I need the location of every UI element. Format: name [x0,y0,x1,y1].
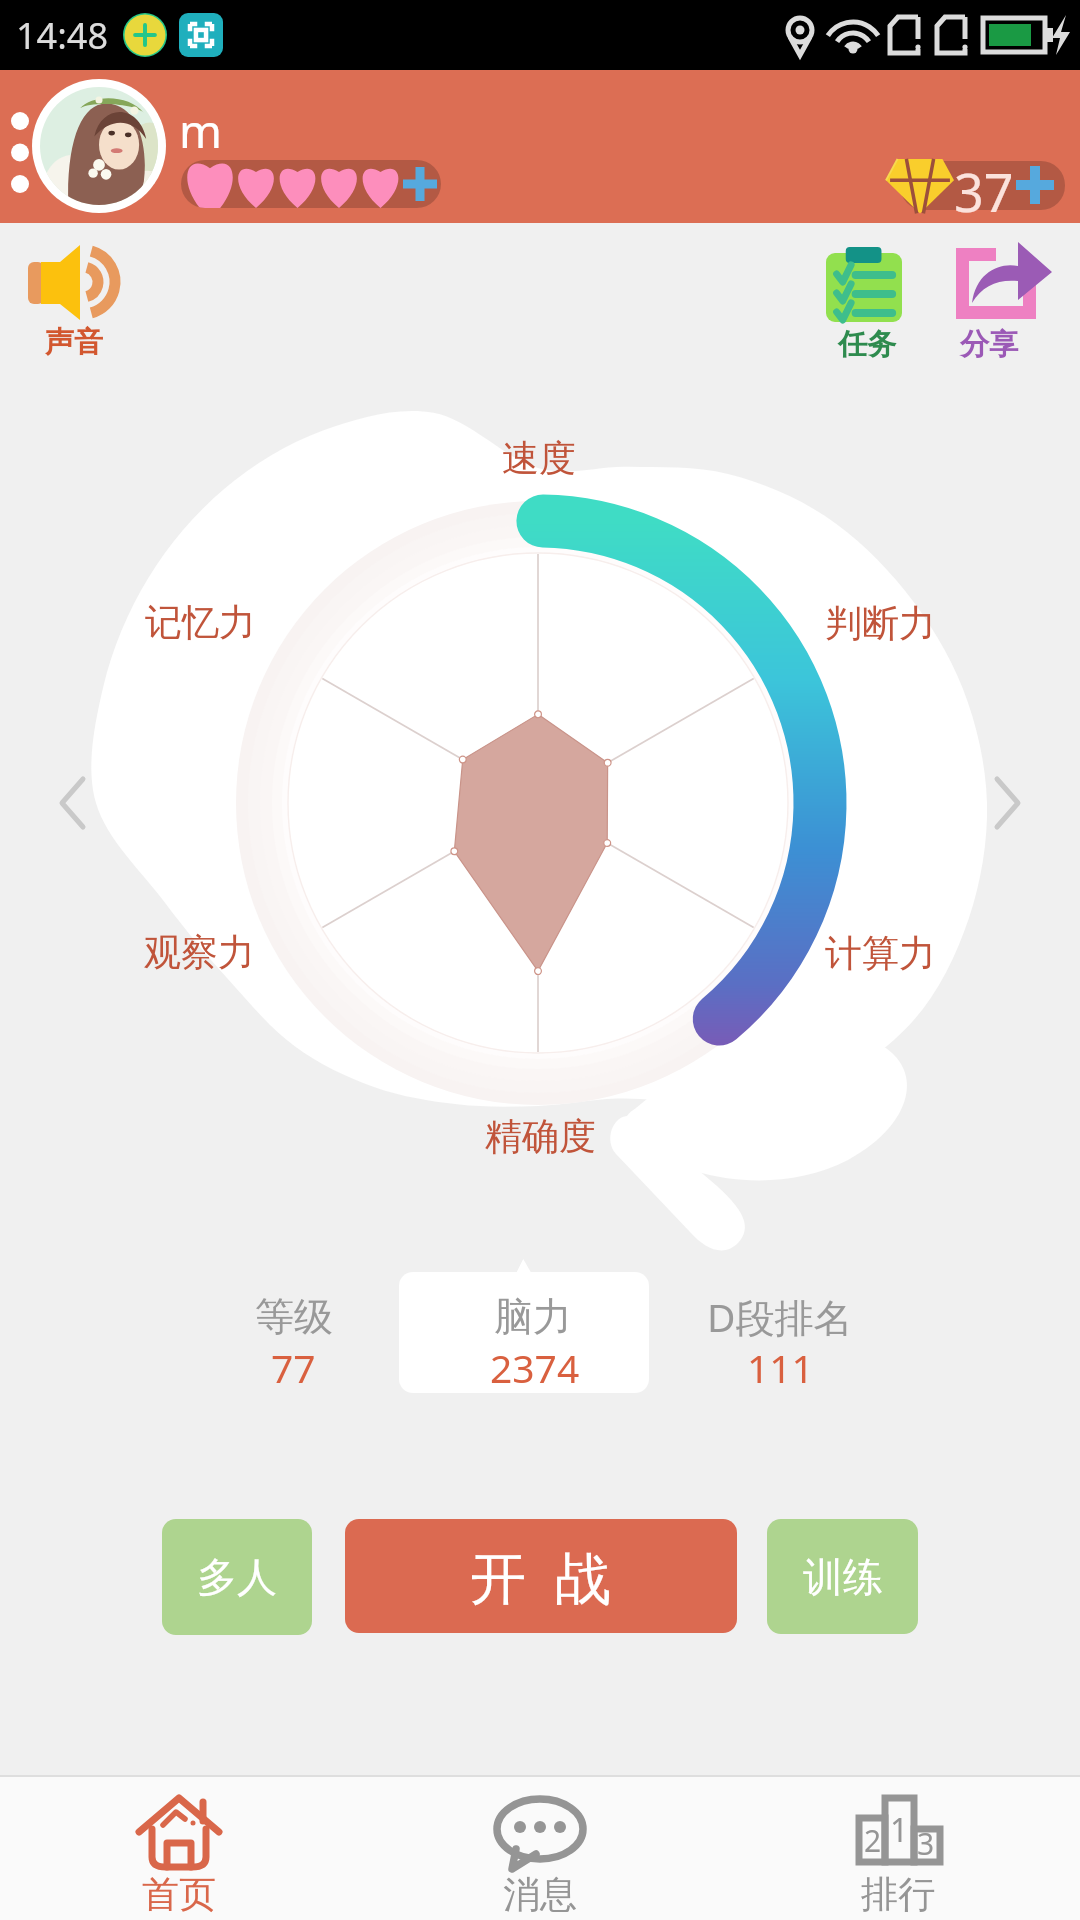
button[interactable]: More options [0,106,32,192]
staticText: 首页 [142,1871,216,1918]
button[interactable]: 训练 [767,1519,918,1634]
button[interactable]: Next [974,748,1046,858]
staticText: 37 [954,156,1014,214]
staticText: 3 [917,1823,935,1864]
staticText: 77 [271,1341,316,1394]
button[interactable]: Profile [32,79,166,213]
button[interactable]: Previous [34,748,106,858]
staticText: 14:48 [16,11,109,60]
staticText: 声音 [45,324,103,361]
button[interactable]: 多人 [162,1519,312,1635]
staticText: 1 [890,1808,909,1852]
staticText: 记忆力 [145,599,256,646]
staticText: 2 [864,1820,882,1861]
button[interactable]: Sound [20,240,130,360]
staticText: 计算力 [825,930,936,977]
staticText: 速度 [502,435,576,482]
staticText: 训练 [803,1552,883,1602]
staticText: 111 [747,1341,814,1394]
button[interactable] [399,1272,649,1393]
button[interactable]: 开 战 [345,1519,737,1633]
button[interactable]: 消息 [460,1777,620,1920]
staticText: 排行 [861,1871,935,1918]
button[interactable]: 任务 [820,240,912,360]
staticText: 观察力 [144,929,255,976]
staticText: 开 战 [470,1538,612,1614]
staticText: 任务 [838,326,896,363]
staticText: m [179,99,223,162]
staticText: D段排名 [707,1290,853,1343]
staticText: 消息 [503,1871,577,1918]
staticText: 分享 [960,326,1018,363]
staticText: 2374 [490,1341,580,1394]
staticText: 多人 [197,1552,277,1602]
button[interactable] [900,161,1065,210]
staticText: 判断力 [825,600,936,647]
button[interactable]: 分享 [950,240,1050,360]
button[interactable]: 1 [818,1777,978,1920]
staticText: 精确度 [485,1113,596,1160]
button[interactable] [181,160,441,208]
button[interactable]: 首页 [99,1777,259,1920]
staticText: 等级 [255,1292,333,1341]
staticText: 脑力 [494,1292,572,1341]
